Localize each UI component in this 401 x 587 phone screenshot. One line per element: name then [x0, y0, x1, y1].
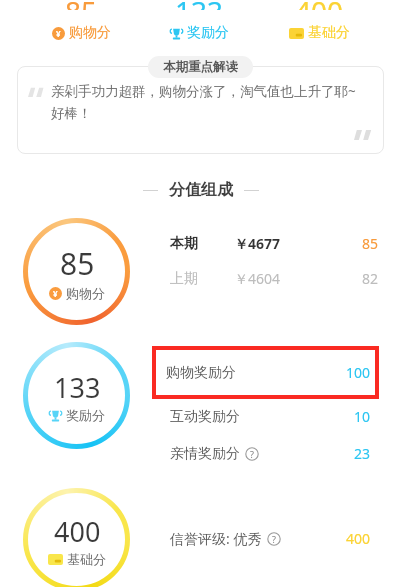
staticText: ?: [272, 533, 276, 545]
staticText: 信誉评级: 优秀: [170, 529, 262, 548]
staticText: 本期重点解读: [163, 59, 238, 75]
staticText: 亲剁手功力超群，购物分涨了，淘气值也上升了耶~ 好棒！: [51, 82, 356, 122]
staticText: ￥4677: [234, 234, 281, 253]
staticText: 奖励分: [187, 24, 229, 42]
staticText: 基础分: [67, 551, 106, 567]
staticText: 85: [362, 234, 379, 253]
staticText: 购物分: [66, 285, 105, 301]
staticText: 购物奖励分: [166, 364, 236, 382]
staticText: 133: [54, 369, 101, 406]
staticText: 400: [295, 1, 344, 10]
staticText: 上期: [170, 270, 198, 288]
button[interactable]: 400: [23, 488, 130, 587]
button[interactable]: 133: [23, 342, 130, 449]
staticText: 基础分: [308, 24, 350, 42]
staticText: 133: [175, 1, 224, 10]
button[interactable]: 400: [281, 1, 358, 44]
staticText: 82: [362, 269, 379, 288]
button[interactable]: 85: [23, 218, 130, 325]
staticText: ￥4604: [234, 269, 281, 288]
button[interactable]: 133: [162, 1, 237, 44]
staticText: 85: [65, 1, 98, 10]
staticText: 85: [60, 243, 95, 284]
staticText: 亲情奖励分: [170, 445, 240, 463]
button[interactable]: 互动奖励分: [170, 407, 371, 426]
button[interactable]: 信誉评级: 优秀: [170, 529, 371, 548]
other: 说明: [245, 447, 259, 461]
staticText: 分值组成: [169, 180, 233, 200]
button[interactable]: 85: [44, 1, 119, 44]
button[interactable]: 上期: [152, 269, 379, 288]
staticText: 本期: [170, 235, 198, 253]
staticText: 购物分: [69, 24, 111, 42]
staticText: 10: [354, 407, 371, 426]
other: 说明: [267, 532, 281, 546]
staticText: 23: [354, 444, 371, 463]
button[interactable]: 本期重点解读: [148, 56, 253, 78]
staticText: ¥: [56, 28, 61, 39]
staticText: 互动奖励分: [170, 408, 240, 426]
staticText: ?: [250, 448, 254, 460]
staticText: 400: [346, 529, 371, 548]
staticText: 100: [346, 363, 371, 382]
staticText: 奖励分: [66, 407, 105, 423]
staticText: ¥: [53, 288, 58, 299]
button[interactable]: 亲情奖励分: [170, 444, 371, 463]
button[interactable]: 购物奖励分: [152, 346, 379, 399]
staticText: 400: [54, 513, 101, 550]
button[interactable]: 本期: [152, 234, 379, 253]
button[interactable]: 购物奖励分: [166, 363, 371, 382]
